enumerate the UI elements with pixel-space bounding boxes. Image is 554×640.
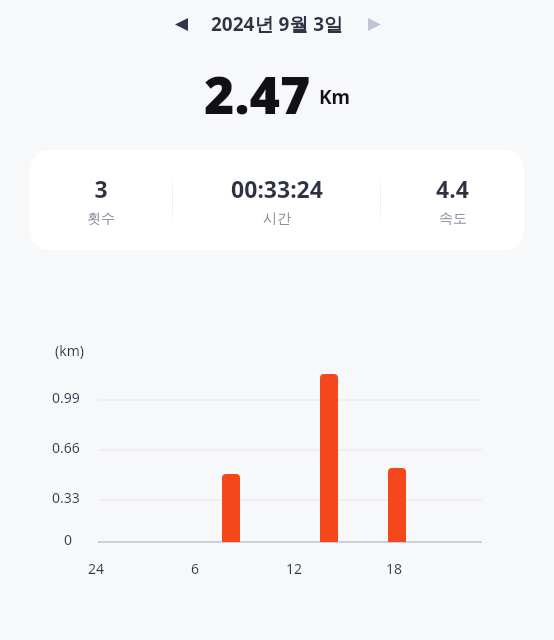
staticText: 4.4 (436, 173, 469, 204)
staticText: Km (319, 84, 351, 110)
staticText: 12 (286, 559, 303, 578)
button[interactable]: Next day (356, 6, 392, 42)
staticText: 2.47 (204, 58, 311, 118)
staticText: 2024년 9월 3일 (211, 11, 344, 37)
button[interactable]: 3 (30, 173, 172, 228)
staticText: 횟수 (87, 210, 115, 228)
staticText: 24 (88, 559, 105, 578)
staticText: 6 (191, 559, 200, 578)
button[interactable]: 00:33:24 (173, 173, 380, 228)
staticText: 0.66 (52, 438, 80, 457)
staticText: 0 (64, 530, 73, 549)
staticText: 속도 (439, 210, 467, 228)
staticText: (km) (55, 341, 84, 360)
staticText: 18 (386, 559, 403, 578)
staticText: 0.33 (52, 488, 80, 507)
button[interactable]: 4.4 (381, 173, 524, 228)
staticText: 0.99 (52, 388, 80, 407)
button[interactable]: 3 (30, 150, 524, 250)
button[interactable]: Previous day (163, 6, 199, 42)
staticText: 00:33:24 (231, 173, 323, 204)
staticText: 3 (94, 173, 108, 204)
staticText: 시간 (263, 210, 291, 228)
